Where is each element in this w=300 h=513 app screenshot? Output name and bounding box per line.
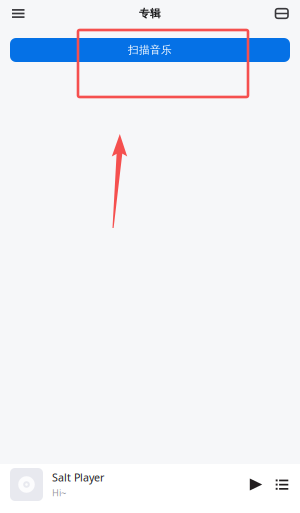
staticText: Hi~ bbox=[52, 486, 66, 499]
staticText: Salt Player bbox=[52, 470, 104, 484]
button[interactable]: Change layout bbox=[261, 1, 300, 26]
button[interactable]: Playing queue bbox=[269, 471, 295, 497]
button[interactable]: Menu bbox=[0, 1, 38, 26]
staticText: 扫描音乐 bbox=[128, 43, 172, 56]
button[interactable]: Play bbox=[243, 471, 269, 497]
button[interactable]: 扫描音乐 bbox=[10, 38, 290, 62]
staticText: 专辑 bbox=[139, 7, 161, 20]
button[interactable]: Salt Player bbox=[0, 468, 104, 501]
